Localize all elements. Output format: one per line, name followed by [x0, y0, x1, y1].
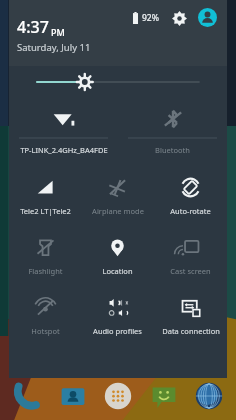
staticText: Cast screen [170, 266, 211, 276]
staticText: 92% [142, 12, 159, 24]
button[interactable]: Location [81, 226, 154, 286]
staticText: Bluetooth [155, 145, 190, 155]
button[interactable]: Phone [12, 381, 42, 411]
button[interactable]: Brightness [9, 66, 227, 98]
button[interactable]: Flashlight [9, 226, 81, 286]
staticText: 4:37 [17, 16, 49, 38]
button[interactable]: Airplane mode [81, 166, 154, 226]
staticText: PM [51, 26, 65, 38]
staticText: Saturday, July 11 [17, 41, 91, 54]
staticText: Data connection [162, 326, 220, 336]
button[interactable]: Bluetooth [118, 98, 227, 166]
button[interactable]: Settings [169, 8, 189, 28]
button[interactable]: Data connection [154, 286, 227, 346]
staticText: Auto-rotate [170, 206, 211, 216]
button[interactable]: Auto-rotate [154, 166, 227, 226]
button[interactable]: Browser [194, 381, 224, 411]
button[interactable]: Cast screen [154, 226, 227, 286]
button[interactable]: Hotspot [9, 286, 81, 346]
button[interactable]: Audio profiles [81, 286, 154, 346]
staticText: Hotspot [31, 326, 60, 336]
staticText: Audio profiles [93, 326, 142, 336]
button[interactable]: Contacts [58, 381, 88, 411]
staticText: Location [102, 266, 133, 276]
button[interactable]: Messaging [149, 381, 179, 411]
staticText: Flashlight [28, 266, 63, 276]
staticText: Airplane mode [92, 206, 144, 216]
button[interactable]: Tele2 LT|Tele2 [9, 166, 81, 226]
staticText: TP-LINK_2.4GHz_BA4FDE [20, 145, 108, 155]
button[interactable]: All apps [103, 381, 133, 411]
button[interactable]: User profile [197, 7, 218, 28]
button[interactable]: TP-LINK_2.4GHz_BA4FDE [9, 98, 118, 166]
staticText: Tele2 LT|Tele2 [20, 206, 71, 216]
